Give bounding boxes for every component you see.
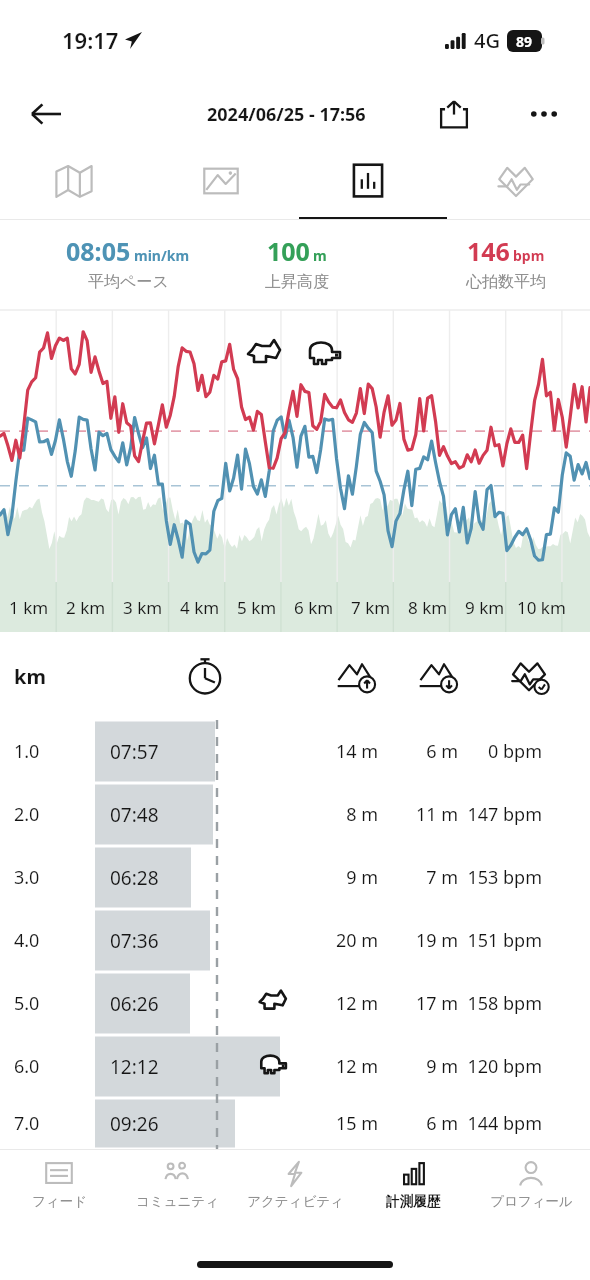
staticText: 146	[467, 234, 510, 268]
staticText: m	[313, 246, 327, 265]
button[interactable]: Charts	[294, 148, 442, 220]
staticText: 5.0	[14, 991, 40, 1016]
staticText: 11 m	[415, 802, 458, 827]
staticText: 100	[267, 234, 310, 268]
staticText: フィード	[32, 1193, 87, 1210]
staticText: 9 km	[465, 596, 505, 619]
button[interactable]: Back	[20, 88, 72, 140]
staticText: 12 m	[335, 991, 378, 1016]
staticText: 17 m	[415, 991, 458, 1016]
staticText: 153 bpm	[467, 865, 542, 890]
staticText: 06:28	[110, 865, 159, 891]
staticText: 12 m	[335, 1054, 378, 1079]
button[interactable]: 7.0	[0, 1098, 590, 1149]
staticText: 9 m	[346, 865, 378, 890]
button[interactable]: Photos	[147, 148, 294, 220]
staticText: 4 km	[180, 596, 220, 619]
staticText: 9 m	[426, 1054, 458, 1079]
staticText: 10 km	[517, 596, 566, 619]
staticText: 120 bpm	[467, 1054, 542, 1079]
staticText: 8 m	[346, 802, 378, 827]
staticText: 06:26	[110, 991, 159, 1017]
staticText: 158 bpm	[467, 991, 542, 1016]
staticText: 15 m	[335, 1111, 378, 1136]
button[interactable]: コミュニティ	[118, 1150, 236, 1228]
button[interactable]: プロフィール	[472, 1150, 590, 1228]
staticText: 1.0	[14, 739, 40, 764]
staticText: 4G	[474, 27, 500, 54]
staticText: 2.0	[14, 802, 40, 827]
button[interactable]: Map	[0, 148, 147, 220]
staticText: 08:05	[66, 234, 131, 268]
button[interactable]: 3.0	[0, 846, 590, 909]
staticText: bpm	[513, 246, 545, 265]
button[interactable]: 1.0	[0, 720, 590, 783]
staticText: 6 km	[294, 596, 334, 619]
staticText: 7.0	[14, 1111, 40, 1136]
staticText: 心拍数平均	[466, 272, 546, 292]
staticText: 2024/06/25 - 17:56	[207, 102, 366, 127]
button[interactable]: 2.0	[0, 783, 590, 846]
staticText: 19:17	[62, 25, 119, 55]
staticText: 09:26	[110, 1111, 159, 1137]
staticText: 89	[516, 32, 533, 51]
staticText: 19 m	[415, 928, 458, 953]
staticText: 12:12	[110, 1054, 159, 1080]
button[interactable]: フィード	[0, 1150, 118, 1228]
staticText: 8 km	[408, 596, 448, 619]
staticText: 6 m	[426, 1111, 458, 1136]
staticText: 6 m	[426, 739, 458, 764]
staticText: アクティビティ	[247, 1193, 344, 1210]
button[interactable]: Heart rate	[442, 148, 590, 220]
staticText: 6.0	[14, 1054, 40, 1079]
staticText: 151 bpm	[467, 928, 542, 953]
staticText: プロフィール	[490, 1193, 573, 1210]
staticText: 20 m	[335, 928, 378, 953]
button[interactable]: 6.0	[0, 1035, 590, 1098]
staticText: 2 km	[66, 596, 106, 619]
staticText: 7 m	[426, 865, 458, 890]
staticText: 3.0	[14, 865, 40, 890]
button[interactable]: 5.0	[0, 972, 590, 1035]
button[interactable]: アクティビティ	[236, 1150, 354, 1228]
staticText: 3 km	[123, 596, 163, 619]
staticText: 07:36	[110, 928, 159, 954]
button[interactable]: 計測履歴	[354, 1150, 472, 1228]
staticText: 0 bpm	[488, 739, 542, 764]
staticText: min/km	[134, 246, 190, 265]
staticText: 1 km	[9, 596, 49, 619]
staticText: 07:48	[110, 802, 159, 828]
staticText: 144 bpm	[467, 1111, 542, 1136]
staticText: km	[14, 663, 46, 690]
staticText: 4.0	[14, 928, 40, 953]
button[interactable]: 4.0	[0, 909, 590, 972]
staticText: コミュニティ	[136, 1193, 219, 1210]
staticText: 上昇高度	[265, 272, 329, 292]
button[interactable]: More options	[520, 90, 568, 138]
staticText: 7 km	[351, 596, 391, 619]
staticText: 計測履歴	[386, 1193, 440, 1210]
staticText: 07:57	[110, 739, 159, 765]
staticText: 平均ペース	[88, 272, 169, 292]
staticText: 5 km	[237, 596, 277, 619]
staticText: 147 bpm	[467, 802, 542, 827]
staticText: 14 m	[335, 739, 378, 764]
button[interactable]: Share	[430, 90, 478, 138]
